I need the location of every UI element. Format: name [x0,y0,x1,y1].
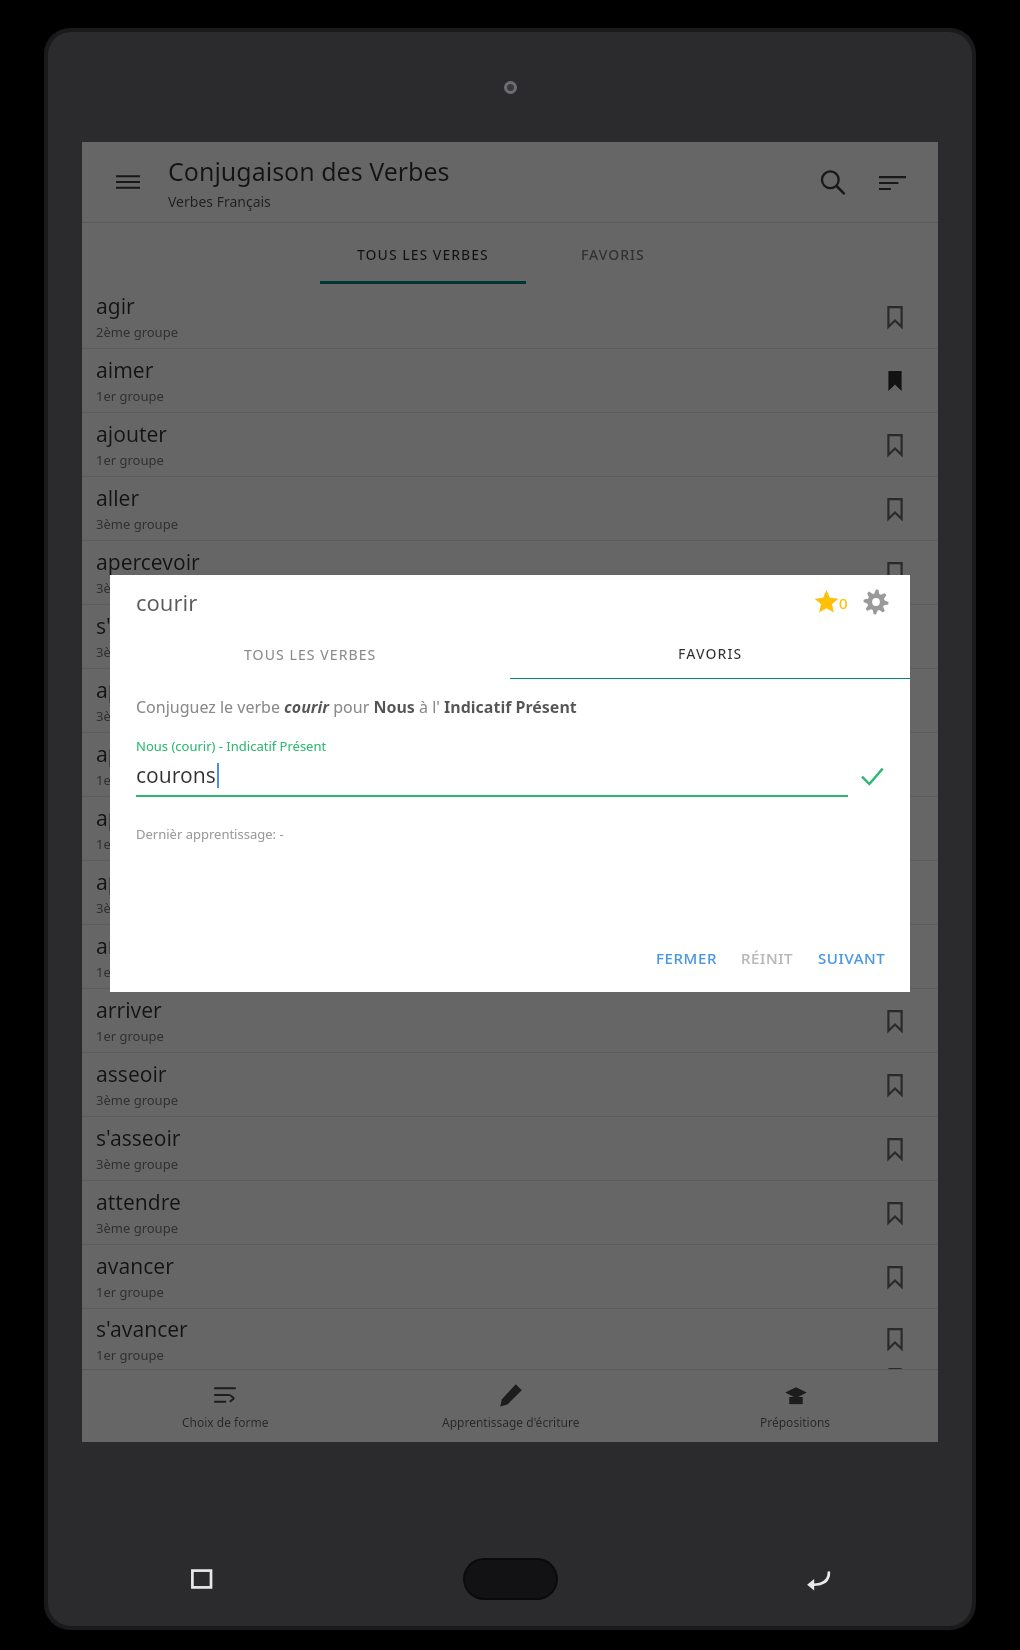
button[interactable]: ajouter [82,413,938,476]
staticText: TOUS LES VERBES [357,245,489,264]
staticText: agir [96,292,135,321]
other: Correct [860,765,884,789]
staticText: aller [96,484,140,513]
button[interactable]: FERMER [648,940,725,976]
staticText: 3ème groupe [96,643,178,661]
staticText: s'asseoir [96,1124,181,1153]
button[interactable]: Settings [860,586,892,618]
button[interactable]: arrêter [82,925,938,988]
button[interactable]: Bookmark [874,680,916,722]
staticText: s'avancer [96,1315,188,1344]
staticText: Conjuguez le verbe courir pour Nous à l'… [136,696,577,718]
staticText: asseoir [96,1060,167,1089]
button[interactable]: Bookmark [874,1256,916,1298]
staticText: Dernièr apprentissage: - [136,825,284,843]
staticText: courons [136,761,216,790]
button[interactable]: FAVORIS [526,223,700,285]
staticText: 2ème groupe [96,323,178,341]
button[interactable]: apprendre [82,861,938,924]
staticText: apparaître [96,676,199,705]
button[interactable]: aller [82,477,938,540]
button[interactable]: Bookmark [874,424,916,466]
button[interactable]: TOUS LES VERBES [110,629,510,679]
button[interactable]: asseoir [82,1053,938,1116]
button[interactable]: TOUS LES VERBES [320,223,526,285]
staticText: appeler [96,740,172,769]
staticText: 0 [839,593,848,613]
staticText: 1er groupe [96,963,164,981]
staticText: 1er groupe [96,1283,164,1301]
button[interactable]: s'avancer [82,1309,938,1369]
button[interactable]: Bookmark [874,808,916,850]
button[interactable]: Bookmark [874,1318,916,1360]
button[interactable]: avancer [82,1245,938,1308]
staticText: arrêter [96,932,165,961]
button[interactable]: s'asseoir [82,1117,938,1180]
staticText: SUIVANT [818,948,886,968]
staticText: 3ème groupe [96,707,178,725]
button[interactable]: attendre [82,1181,938,1244]
button[interactable]: Back [664,1531,972,1626]
button[interactable]: Bookmark [874,872,916,914]
button[interactable]: Bookmark [874,488,916,530]
button[interactable]: Bookmark [874,744,916,786]
staticText: Verbes Français [168,192,271,211]
button[interactable]: Bookmark [874,616,916,658]
staticText: 1er groupe [96,771,164,789]
button[interactable]: Bookmark [874,936,916,978]
staticText: 3ème groupe [96,1219,178,1237]
button[interactable]: aimer [82,349,938,412]
button[interactable]: Choix de forme [82,1370,368,1442]
button[interactable]: Bookmark [874,296,916,338]
button[interactable]: agir [82,285,938,348]
staticText: 3ème groupe [96,1091,178,1109]
button[interactable]: s'apercevoir [82,605,938,668]
button[interactable]: Home [356,1531,664,1626]
staticText: aimer [96,356,154,385]
button[interactable]: apercevoir [82,541,938,604]
staticText: 3ème groupe [96,515,178,533]
button[interactable]: Bookmark [874,1000,916,1042]
staticText: RÉINIT [741,948,794,968]
staticText: arriver [96,996,162,1025]
staticText: FAVORIS [581,245,645,264]
staticText: 1er groupe [96,451,164,469]
staticText: TOUS LES VERBES [244,645,377,664]
staticText: Conjugaison des Verbes [168,154,450,188]
button[interactable]: Recent apps [48,1531,356,1626]
staticText: avancer [96,1252,174,1281]
button[interactable]: Bookmark [874,360,916,402]
button[interactable]: Bookmark [874,1064,916,1106]
staticText: 1er groupe [96,835,164,853]
staticText: apporter [96,804,184,833]
staticText: courir [136,587,812,617]
button[interactable]: FAVORIS [510,629,910,679]
button[interactable]: Favorites count [812,590,850,615]
button[interactable]: SUIVANT [810,940,894,976]
staticText: FAVORIS [678,644,743,663]
button[interactable]: arriver [82,989,938,1052]
button[interactable]: Prépositions [653,1370,938,1442]
button[interactable]: Bookmark [874,552,916,594]
staticText: 3ème groupe [96,899,178,917]
staticText: apprendre [96,868,200,897]
staticText: s'apercevoir [96,612,214,641]
button[interactable]: apparaître [82,669,938,732]
button[interactable]: Bookmark [874,1192,916,1234]
staticText: 1er groupe [96,387,164,405]
button[interactable]: Search [808,158,856,206]
button[interactable]: appeler [82,733,938,796]
staticText: ajouter [96,420,167,449]
button[interactable]: apporter [82,797,938,860]
staticText: Prépositions [760,1414,831,1430]
staticText: 3ème groupe [96,579,178,597]
staticText: apercevoir [96,548,200,577]
staticText: FERMER [656,948,717,968]
staticText: Apprentissage d'écriture [442,1414,580,1430]
button[interactable]: Menu [106,160,150,204]
button[interactable]: RÉINIT [733,940,802,976]
button[interactable]: Bookmark [874,1128,916,1170]
staticText: attendre [96,1188,181,1217]
button[interactable]: Apprentissage d'écriture [368,1370,653,1442]
button[interactable]: Sort [868,158,916,206]
